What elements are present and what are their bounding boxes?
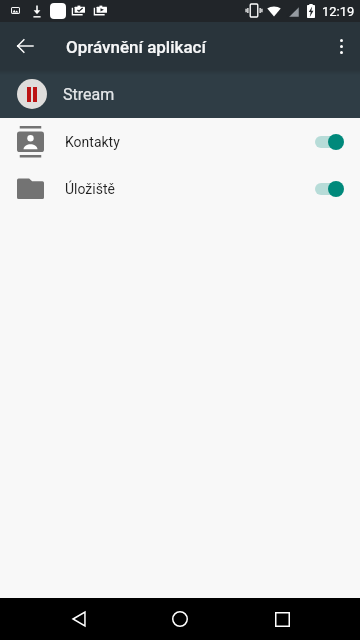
staticText: Úložiště — [65, 181, 115, 197]
button[interactable]: Navigate up — [10, 31, 40, 61]
staticText: Stream — [63, 85, 115, 104]
button[interactable]: Back — [58, 598, 100, 640]
button[interactable]: Stream — [0, 70, 360, 118]
button[interactable]: Home — [159, 598, 201, 640]
button[interactable]: Úložiště — [0, 165, 360, 212]
staticText: 12:19 — [322, 4, 355, 19]
staticText: Oprávnění aplikací — [66, 37, 206, 57]
button[interactable]: Kontakty — [0, 118, 360, 165]
button[interactable]: More options — [325, 30, 357, 62]
button[interactable]: Recent apps — [261, 598, 303, 640]
staticText: Kontakty — [65, 134, 120, 150]
